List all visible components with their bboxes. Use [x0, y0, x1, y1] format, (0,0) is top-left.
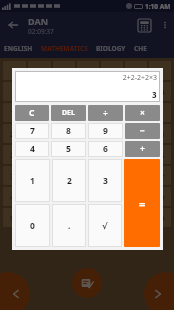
- button[interactable]: √: [88, 204, 122, 247]
- staticText: ÷: [103, 107, 108, 119]
- button[interactable]: BIOLOGY: [96, 44, 126, 53]
- button[interactable]: 3: [53, 61, 75, 80]
- staticText: 1:10 AM: [145, 2, 171, 11]
- button[interactable]: 7: [149, 61, 171, 80]
- button[interactable]: 32: [77, 145, 99, 164]
- button[interactable]: 44: [28, 187, 51, 206]
- button[interactable]: 39: [77, 166, 99, 185]
- button[interactable]: 2: [28, 61, 51, 80]
- staticText: 3: [62, 66, 67, 76]
- staticText: 29: [10, 150, 19, 160]
- button[interactable]: 20: [125, 103, 147, 122]
- button[interactable]: 9: [88, 123, 123, 139]
- button[interactable]: 7: [15, 123, 49, 139]
- button[interactable]: 1: [3, 61, 26, 80]
- button[interactable]: 1: [15, 159, 50, 202]
- button[interactable]: 26: [101, 124, 123, 143]
- button[interactable]: .: [52, 204, 86, 247]
- staticText: 3: [152, 89, 157, 100]
- button[interactable]: 34: [125, 145, 147, 164]
- button[interactable]: 47: [101, 187, 123, 206]
- button[interactable]: 6: [125, 61, 147, 80]
- button[interactable]: 19: [101, 103, 123, 122]
- button[interactable]: 5: [101, 61, 123, 80]
- button[interactable]: 49: [149, 187, 171, 206]
- button[interactable]: +: [125, 141, 160, 157]
- button[interactable]: 30: [28, 145, 51, 164]
- button[interactable]: 4: [77, 61, 99, 80]
- button[interactable]: 15: [3, 103, 26, 122]
- button[interactable]: 51: [28, 208, 51, 227]
- button[interactable]: Next: [144, 272, 174, 310]
- button[interactable]: 18: [77, 103, 99, 122]
- button[interactable]: 53: [77, 208, 99, 227]
- button[interactable]: 14: [149, 82, 171, 101]
- button[interactable]: 37: [28, 166, 51, 185]
- button[interactable]: 43: [3, 187, 26, 206]
- button[interactable]: 38: [53, 166, 75, 185]
- button[interactable]: 56: [149, 208, 171, 227]
- button[interactable]: 5: [51, 141, 86, 157]
- button[interactable]: 23: [28, 124, 51, 143]
- staticText: 8: [66, 125, 71, 137]
- button[interactable]: 35: [149, 145, 171, 164]
- button[interactable]: Calculator: [132, 13, 156, 37]
- button[interactable]: 2: [52, 159, 86, 202]
- button[interactable]: 16: [28, 103, 51, 122]
- button[interactable]: 40: [101, 166, 123, 185]
- button[interactable]: 31: [53, 145, 75, 164]
- button[interactable]: 17: [53, 103, 75, 122]
- staticText: 2: [67, 175, 72, 187]
- staticText: 3: [103, 175, 108, 187]
- button[interactable]: 48: [125, 187, 147, 206]
- staticText: 7: [158, 66, 163, 76]
- button[interactable]: 54: [101, 208, 123, 227]
- button[interactable]: 36: [3, 166, 26, 185]
- button[interactable]: C: [15, 105, 49, 121]
- button[interactable]: 46: [77, 187, 99, 206]
- button[interactable]: 33: [101, 145, 123, 164]
- button[interactable]: 42: [149, 166, 171, 185]
- button[interactable]: 25: [77, 124, 99, 143]
- button[interactable]: 21: [149, 103, 171, 122]
- button[interactable]: Previous: [0, 272, 30, 310]
- button[interactable]: 27: [125, 124, 147, 143]
- staticText: 7: [30, 125, 35, 137]
- button[interactable]: 45: [53, 187, 75, 206]
- button[interactable]: More options: [156, 16, 174, 34]
- button[interactable]: −: [125, 123, 160, 139]
- button[interactable]: 4: [15, 141, 49, 157]
- button[interactable]: =: [124, 159, 160, 247]
- button[interactable]: 3: [88, 159, 122, 202]
- button[interactable]: 28: [149, 124, 171, 143]
- button[interactable]: 8: [51, 123, 86, 139]
- button[interactable]: CHE: [134, 44, 147, 53]
- button[interactable]: 29: [3, 145, 26, 164]
- button[interactable]: ×: [125, 105, 160, 121]
- button[interactable]: 50: [3, 208, 26, 227]
- button[interactable]: 6: [88, 141, 123, 157]
- button[interactable]: Submit: [72, 268, 102, 298]
- button[interactable]: MATHEMATICS: [41, 44, 88, 53]
- button[interactable]: DEL: [51, 105, 86, 121]
- button[interactable]: Back: [0, 12, 26, 38]
- button[interactable]: ENGLISH: [4, 44, 33, 53]
- button[interactable]: ÷: [88, 105, 123, 121]
- staticText: 34: [132, 150, 141, 160]
- button[interactable]: 0: [15, 204, 50, 247]
- button[interactable]: 22: [3, 124, 26, 143]
- button[interactable]: 24: [53, 124, 75, 143]
- button[interactable]: 8: [3, 82, 26, 101]
